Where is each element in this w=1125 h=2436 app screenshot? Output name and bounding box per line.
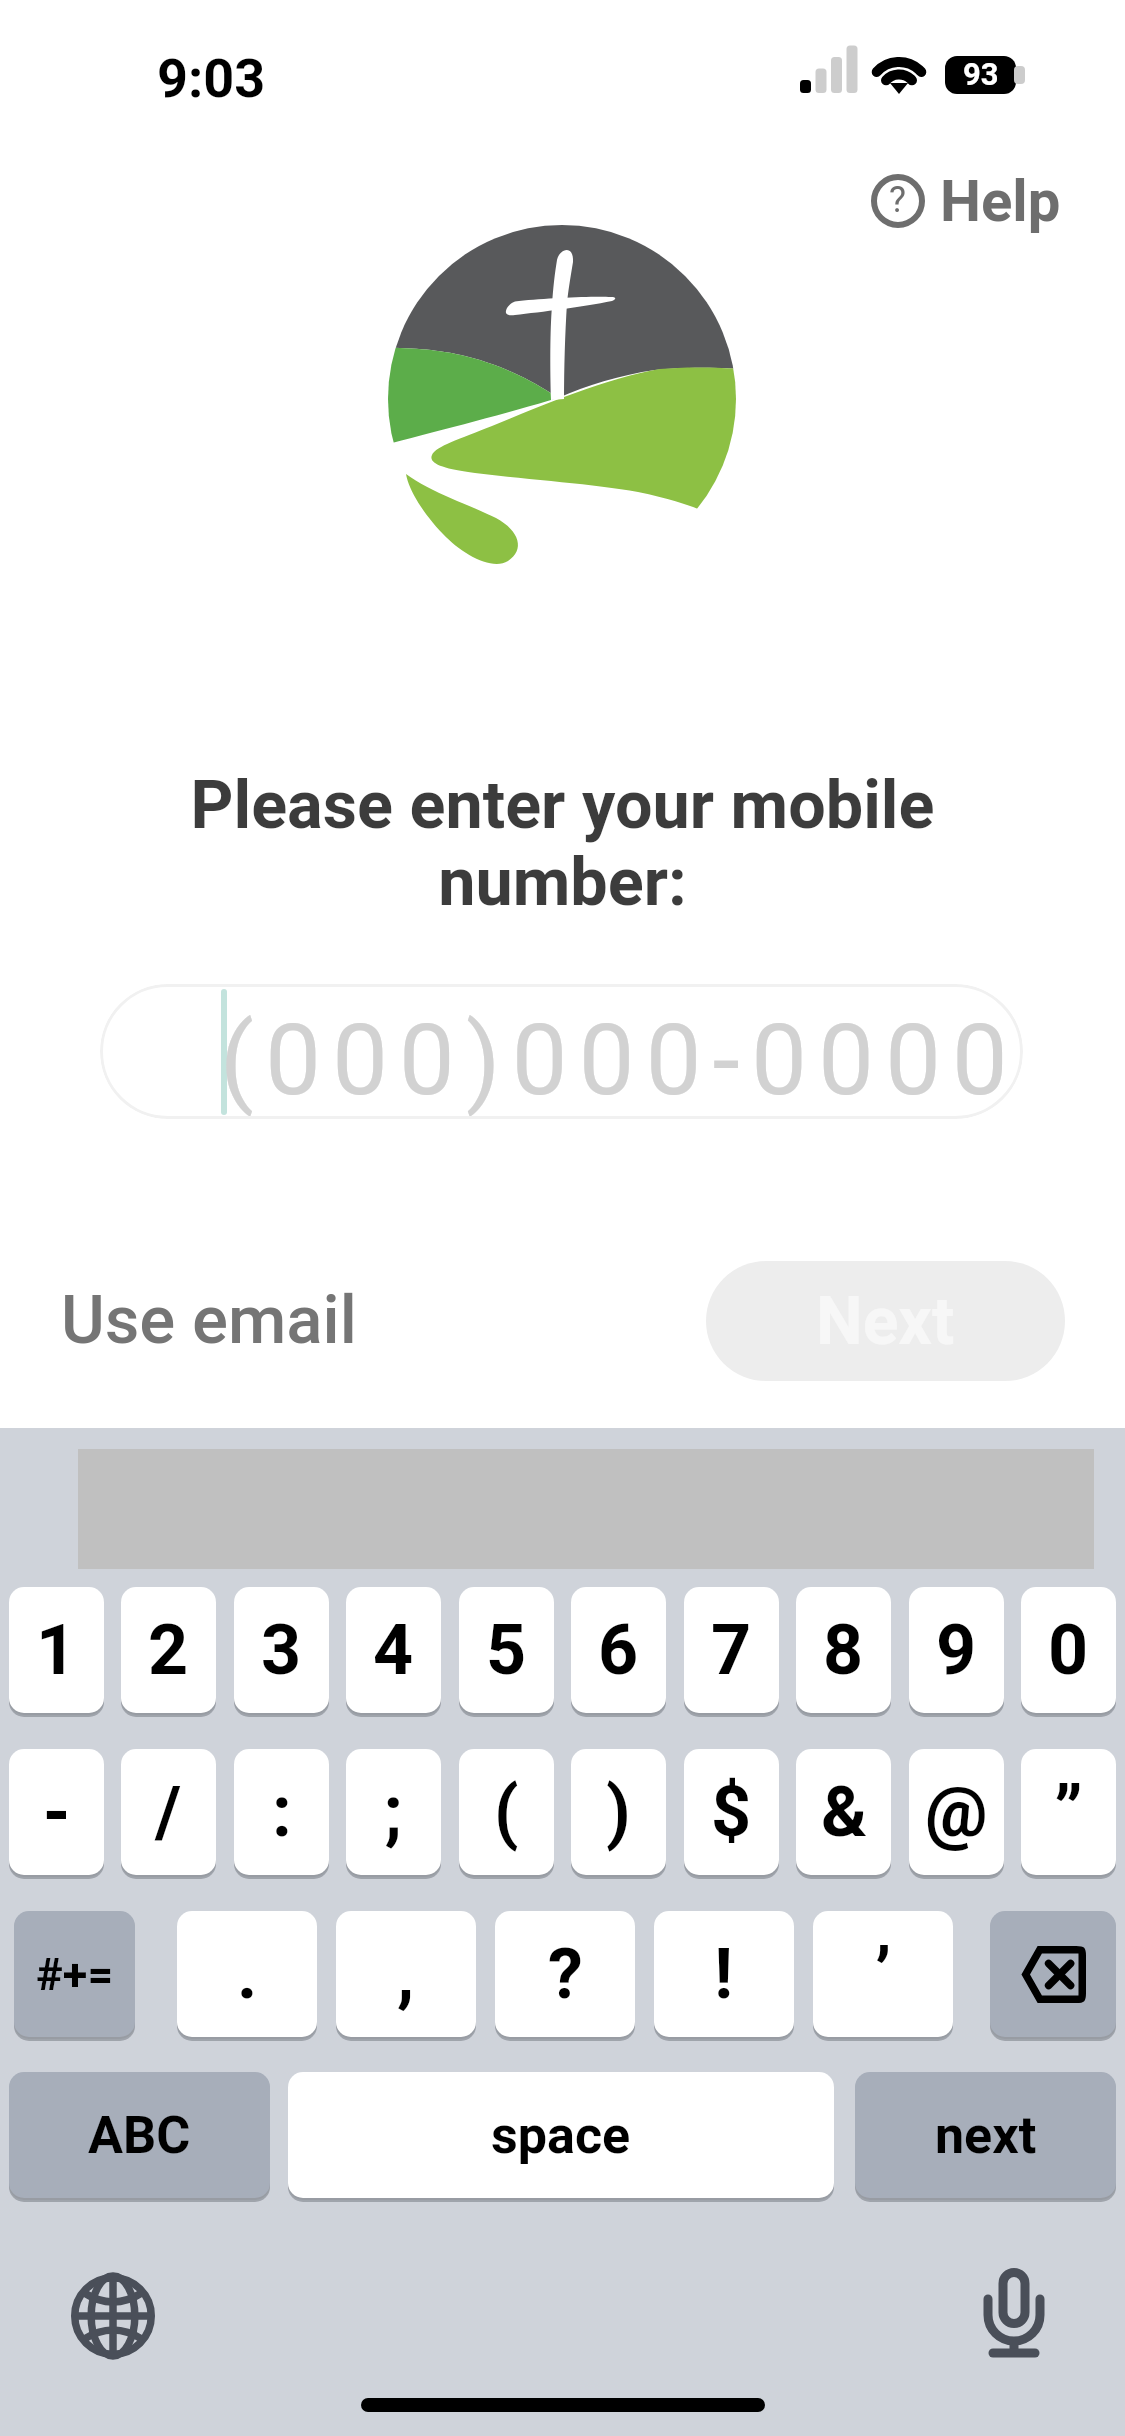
staticText: Next: [816, 1283, 955, 1360]
button[interactable]: #+=: [14, 1911, 135, 2037]
staticText: ABC: [88, 2105, 191, 2166]
button[interactable]: Next: [706, 1261, 1065, 1381]
staticText: 93: [963, 56, 999, 92]
staticText: (000)000-0000: [220, 1002, 1020, 1118]
staticText: ”: [1054, 1771, 1083, 1853]
staticText: -: [43, 1771, 71, 1853]
staticText: @: [925, 1771, 988, 1853]
button[interactable]: next: [855, 2072, 1116, 2198]
button[interactable]: ): [571, 1749, 666, 1875]
staticText: Help: [940, 167, 1061, 235]
button[interactable]: Dictation: [958, 2251, 1070, 2376]
button[interactable]: 8: [796, 1587, 891, 1713]
button[interactable]: /: [121, 1749, 216, 1875]
staticText: (: [494, 1771, 519, 1853]
button[interactable]: ,: [336, 1911, 476, 2037]
button[interactable]: Backspace: [990, 1911, 1116, 2037]
staticText: $: [711, 1771, 752, 1853]
button[interactable]: ’: [813, 1911, 953, 2037]
staticText: 6: [598, 1609, 639, 1691]
button[interactable]: 3: [234, 1587, 329, 1713]
button[interactable]: Switch keyboard language: [55, 2258, 170, 2373]
staticText: 9:03: [157, 47, 266, 110]
button[interactable]: $: [684, 1749, 779, 1875]
button[interactable]: &: [796, 1749, 891, 1875]
staticText: 0: [1048, 1609, 1089, 1691]
button[interactable]: 4: [346, 1587, 441, 1713]
button[interactable]: ”: [1021, 1749, 1116, 1875]
button[interactable]: .: [177, 1911, 317, 2037]
button[interactable]: (000)000-0000: [100, 984, 1023, 1119]
button[interactable]: 7: [684, 1587, 779, 1713]
staticText: ?: [889, 179, 907, 221]
staticText: ,: [397, 1933, 415, 2015]
staticText: .: [237, 1933, 258, 2015]
button[interactable]: ABC: [9, 2072, 270, 2198]
staticText: :: [272, 1771, 292, 1853]
staticText: ’: [875, 1933, 892, 2015]
staticText: !: [714, 1933, 734, 2015]
button[interactable]: 5: [459, 1587, 554, 1713]
button[interactable]: space: [288, 2072, 834, 2198]
button[interactable]: ?: [495, 1911, 635, 2037]
staticText: ): [606, 1771, 631, 1853]
staticText: space: [491, 2105, 631, 2166]
staticText: Use email: [61, 1281, 357, 1360]
button[interactable]: Use email: [37, 1259, 381, 1382]
button[interactable]: ?: [862, 155, 1091, 247]
button[interactable]: (: [459, 1749, 554, 1875]
button[interactable]: @: [909, 1749, 1004, 1875]
staticText: 7: [711, 1609, 752, 1691]
button[interactable]: :: [234, 1749, 329, 1875]
button[interactable]: 1: [9, 1587, 104, 1713]
button[interactable]: 0: [1021, 1587, 1116, 1713]
staticText: next: [935, 2105, 1037, 2166]
staticText: 8: [823, 1609, 864, 1691]
staticText: ;: [384, 1771, 403, 1853]
button[interactable]: 9: [909, 1587, 1004, 1713]
button[interactable]: -: [9, 1749, 104, 1875]
staticText: /: [155, 1771, 182, 1853]
staticText: ?: [548, 1933, 583, 2015]
staticText: 4: [373, 1609, 414, 1691]
staticText: 9: [936, 1609, 977, 1691]
button[interactable]: !: [654, 1911, 794, 2037]
staticText: &: [821, 1771, 867, 1853]
staticText: #+=: [36, 1948, 114, 2001]
button[interactable]: ;: [346, 1749, 441, 1875]
staticText: 3: [261, 1609, 302, 1691]
staticText: 5: [486, 1609, 527, 1691]
staticText: 2: [148, 1609, 189, 1691]
staticText: 1: [36, 1609, 77, 1691]
staticText: Please enter your mobile number:: [95, 766, 1030, 921]
button[interactable]: 2: [121, 1587, 216, 1713]
button[interactable]: 6: [571, 1587, 666, 1713]
